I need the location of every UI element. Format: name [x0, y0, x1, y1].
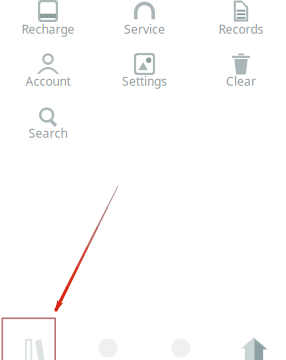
staticText: Settings: [122, 73, 167, 89]
button[interactable]: Recharge: [0, 0, 286, 360]
staticText: Service: [124, 21, 165, 37]
button[interactable]: Discover: [72, 326, 143, 360]
staticText: Clear: [226, 73, 256, 89]
button[interactable]: Home: [218, 328, 286, 360]
staticText: Recharge: [21, 21, 74, 37]
button[interactable]: Clear: [0, 0, 286, 360]
button[interactable]: Messages: [145, 326, 216, 360]
button[interactable]: Settings: [0, 0, 286, 360]
staticText: Account: [25, 73, 70, 89]
button[interactable]: Account: [0, 0, 286, 360]
button[interactable]: Search: [0, 0, 286, 360]
button[interactable]: Records: [0, 0, 286, 360]
staticText: Search: [28, 125, 67, 141]
button[interactable]: Service: [0, 0, 286, 360]
button[interactable]: Library: [0, 329, 70, 360]
staticText: Records: [218, 21, 263, 37]
